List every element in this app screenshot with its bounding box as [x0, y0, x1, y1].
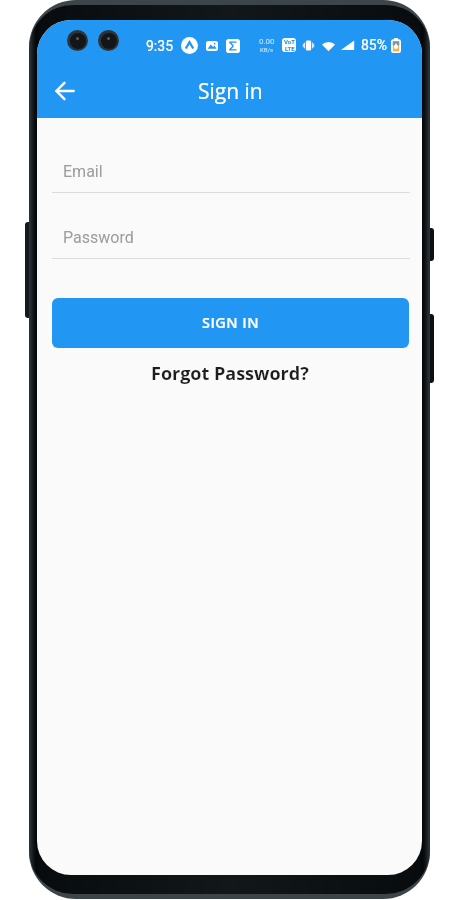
button[interactable]: Forgot Password?: [37, 361, 422, 386]
staticText: Email: [63, 162, 103, 181]
button[interactable]: SIGN IN: [52, 298, 409, 348]
staticText: Sign in: [198, 77, 263, 106]
staticText: LTE: [285, 45, 295, 52]
staticText: 0.00: [259, 37, 275, 46]
staticText: 9:35: [146, 38, 173, 54]
staticText: Password: [63, 228, 134, 247]
staticText: VoT: [284, 38, 295, 45]
staticText: SIGN IN: [202, 313, 259, 333]
staticText: Forgot Password?: [151, 361, 309, 386]
staticText: KB/s: [260, 46, 274, 53]
staticText: 85%: [361, 37, 387, 53]
button[interactable]: Back: [45, 71, 85, 111]
